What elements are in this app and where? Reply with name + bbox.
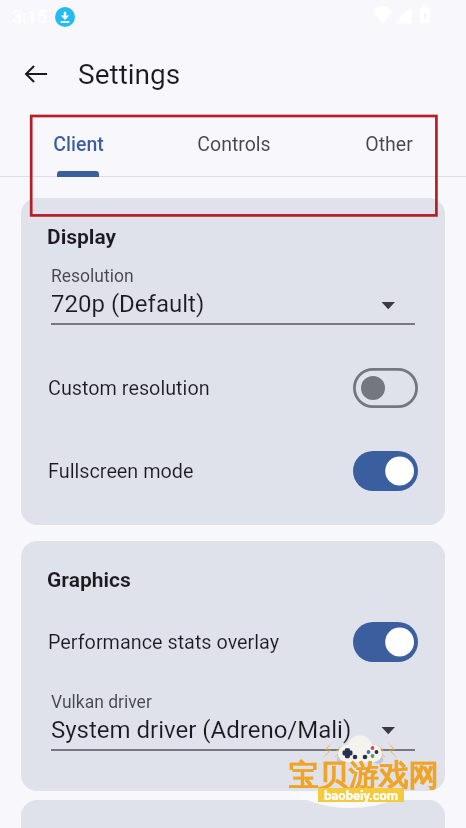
- staticText: Controls: [197, 133, 271, 156]
- staticText: Vulkan driver: [51, 692, 152, 713]
- staticText: Custom resolution: [48, 377, 353, 400]
- button[interactable]: Controls: [156, 108, 311, 177]
- button[interactable]: Vulkan driver: [51, 692, 415, 751]
- staticText: Settings: [78, 58, 181, 91]
- button[interactable]: Custom resolution: [21, 362, 445, 414]
- staticText: 宝贝游戏网: [288, 757, 438, 795]
- button[interactable]: Resolution: [51, 266, 415, 325]
- staticText: Other: [365, 133, 413, 156]
- button[interactable]: Other: [311, 108, 466, 177]
- staticText: Graphics: [47, 568, 131, 593]
- button[interactable]: Client: [0, 108, 156, 177]
- staticText: System driver (Adreno/Mali): [51, 716, 352, 744]
- staticText: Display: [47, 225, 117, 250]
- button[interactable]: Performance stats overlay: [21, 616, 445, 668]
- button[interactable]: Back: [12, 50, 60, 98]
- button[interactable]: Fullscreen mode: [21, 445, 445, 497]
- staticText: Performance stats overlay: [48, 631, 353, 654]
- staticText: Resolution: [51, 266, 134, 287]
- staticText: 720p (Default): [51, 290, 205, 318]
- staticText: Client: [53, 133, 104, 156]
- staticText: 3:15: [12, 6, 48, 27]
- staticText: baobeiy.com: [324, 788, 399, 802]
- staticText: Fullscreen mode: [48, 460, 353, 483]
